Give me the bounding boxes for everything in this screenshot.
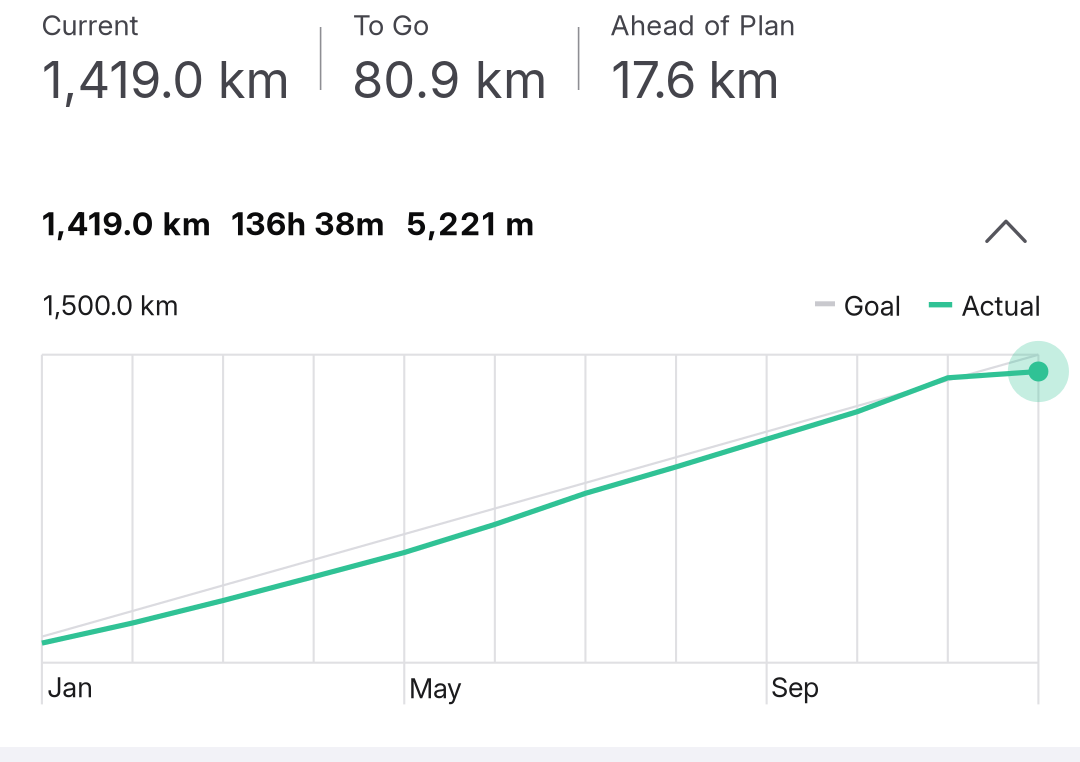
staticText: Ahead of Plan	[610, 8, 795, 42]
button[interactable]: 1,419.0 km	[0, 195, 1080, 762]
staticText: 5,221 m	[407, 204, 535, 243]
staticText: Current	[42, 8, 139, 42]
staticText: Actual	[961, 289, 1040, 322]
staticText: 17.6 km	[611, 49, 779, 110]
staticText: 80.9 km	[352, 49, 547, 110]
staticText: Goal	[844, 289, 901, 322]
staticText: 1,500.0 km	[43, 289, 179, 322]
staticText: 136h 38m	[232, 204, 385, 243]
staticText: 1,419.0 km	[42, 204, 211, 243]
staticText: Jan	[47, 671, 93, 704]
staticText: To Go	[353, 8, 429, 42]
staticText: 1,419.0 km	[42, 49, 289, 110]
staticText: Sep	[771, 671, 819, 704]
staticText: May	[409, 672, 462, 705]
